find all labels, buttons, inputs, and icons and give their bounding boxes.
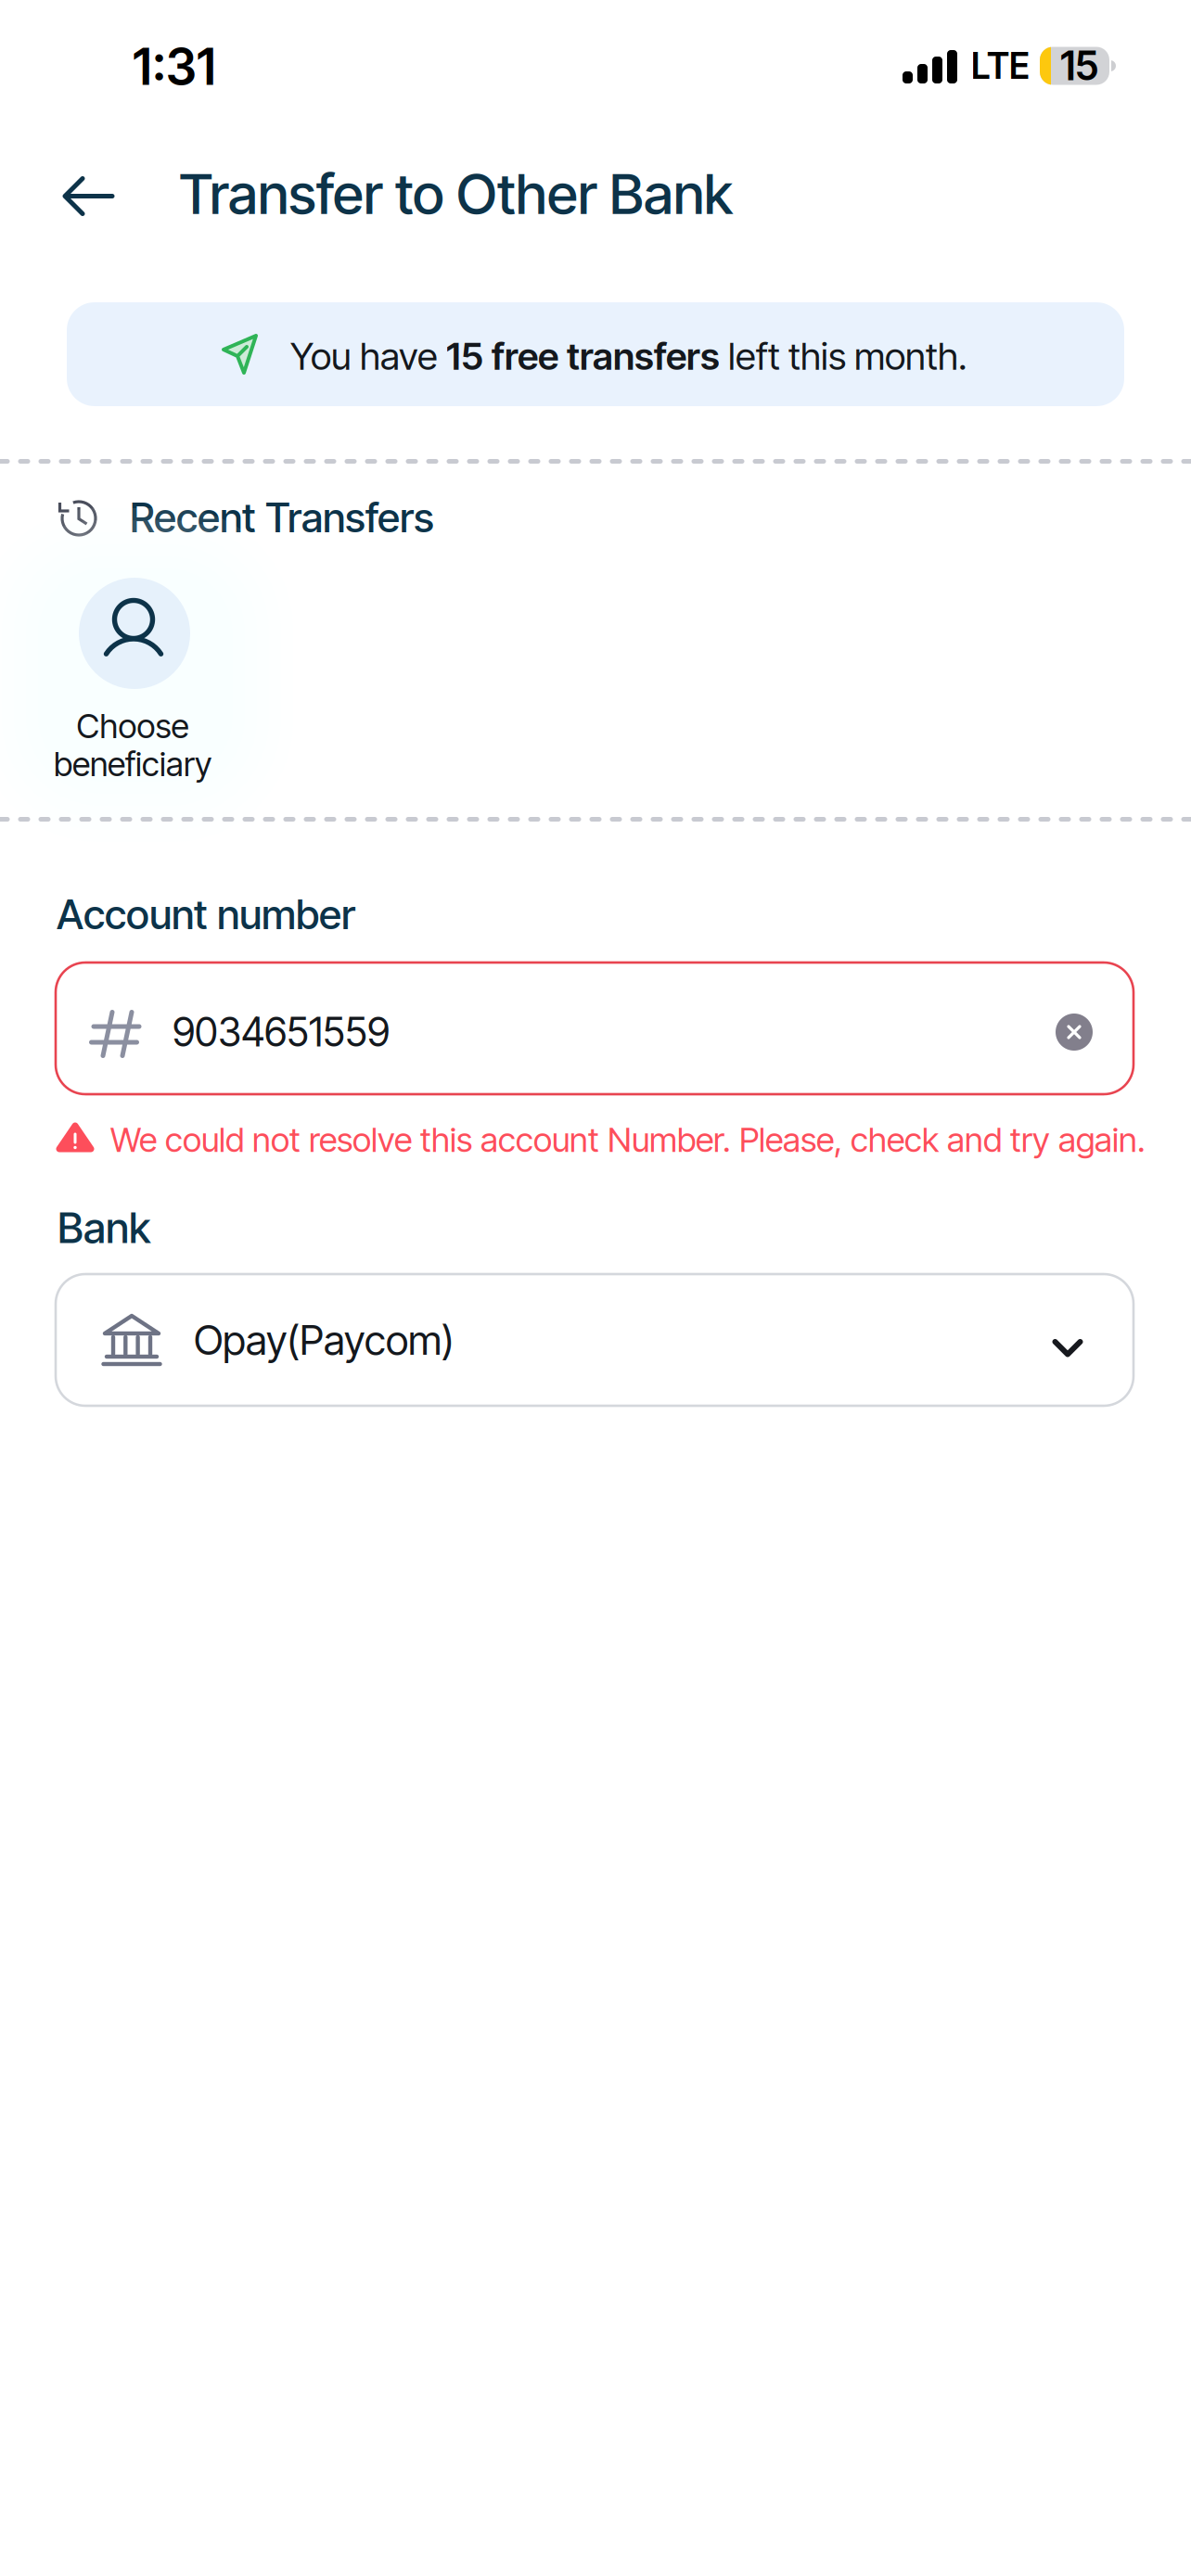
staticText: Bank <box>58 1202 150 1253</box>
staticText: 1:31 <box>133 37 216 97</box>
staticText: beneficiary <box>54 744 211 784</box>
staticText: Account number <box>57 890 355 939</box>
staticText: LTE <box>971 44 1030 88</box>
button[interactable]: Choose <box>0 538 278 816</box>
button[interactable]: Opay(Paycom) <box>56 1274 1133 1406</box>
staticText: 15 <box>1060 42 1098 90</box>
staticText: Transfer to Other Bank <box>179 160 733 227</box>
staticText: You have 15 free transfers left this mon… <box>290 334 967 378</box>
button[interactable]: Back <box>38 150 140 243</box>
staticText: We could not resolve this account Number… <box>110 1119 1146 1160</box>
button[interactable]: Clear <box>1037 995 1111 1069</box>
staticText: Opay(Paycom) <box>194 1315 455 1365</box>
staticText: 9034651559 <box>173 1008 390 1056</box>
staticText: Recent Transfers <box>130 493 434 542</box>
staticText: Choose <box>77 706 189 746</box>
